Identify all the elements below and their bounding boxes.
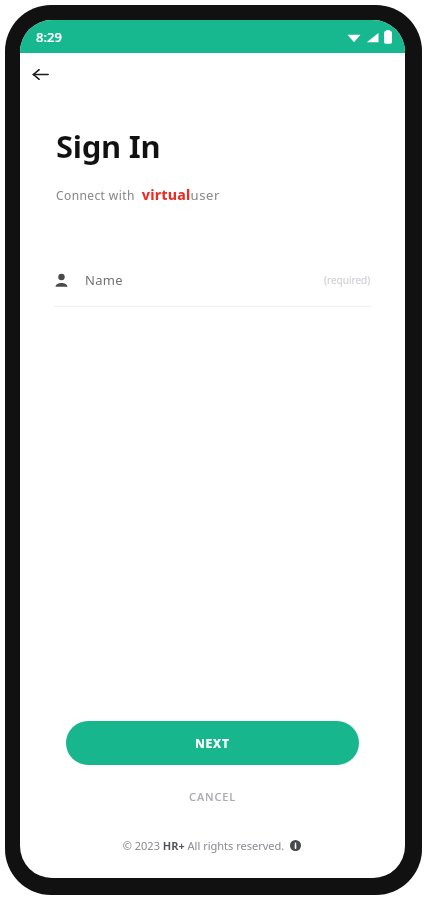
staticText: (required) [324, 273, 371, 287]
button[interactable]: Information [286, 836, 304, 854]
button[interactable]: Back [22, 56, 58, 92]
button[interactable]: Name [54, 262, 371, 298]
staticText: Name [85, 271, 123, 289]
button[interactable]: CANCEL [165, 783, 261, 810]
staticText: NEXT [195, 735, 230, 751]
staticText: Sign In [56, 125, 161, 167]
staticText: Connect with virtualuser [56, 185, 220, 204]
staticText: 8:29 [36, 28, 62, 46]
staticText: © 2023 HR+ All rights reserved. [121, 838, 286, 853]
staticText: CANCEL [189, 789, 237, 804]
button[interactable]: NEXT [66, 721, 359, 765]
